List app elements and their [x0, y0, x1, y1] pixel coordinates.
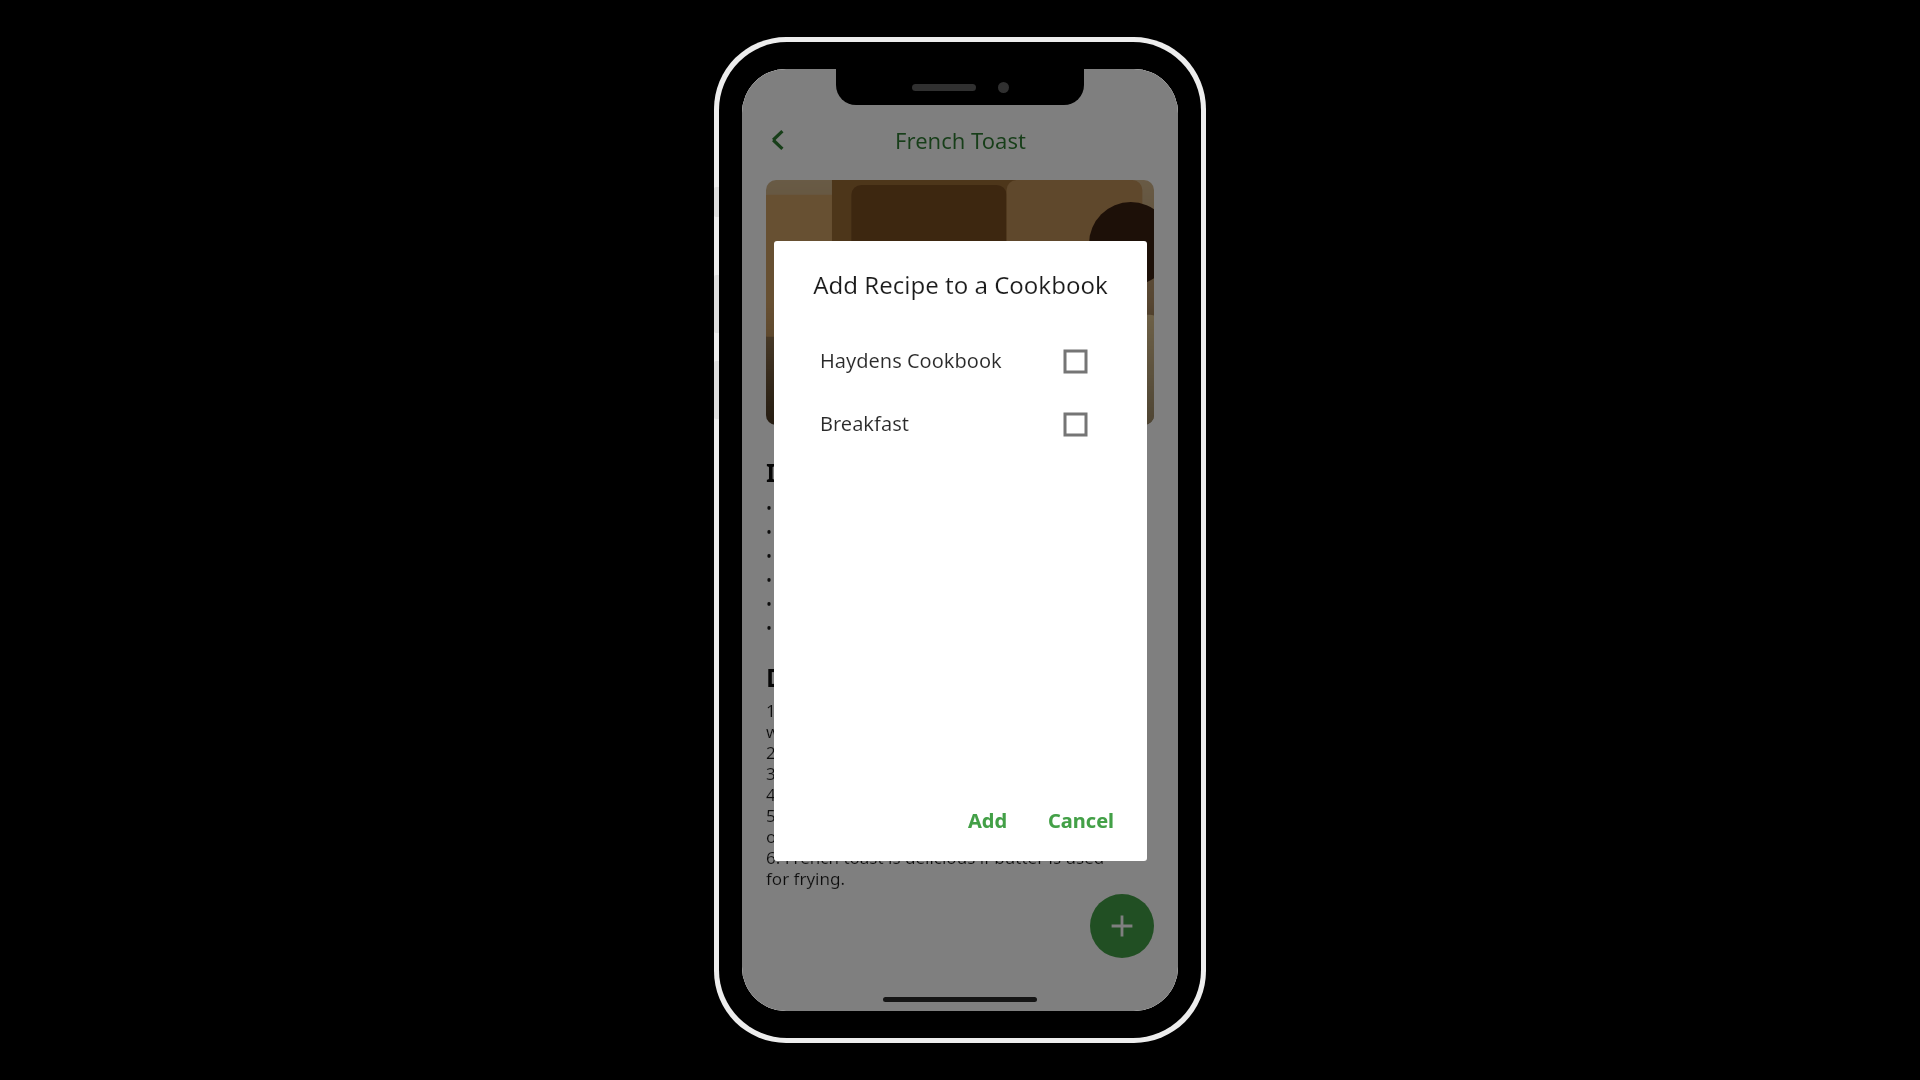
staticText: Cancel	[1048, 807, 1115, 834]
staticText: Directions	[766, 660, 894, 694]
button[interactable]: Cancel	[1034, 798, 1129, 843]
staticText: Breakfast	[820, 410, 909, 437]
staticText: Add Recipe to a Cookbook	[774, 268, 1147, 301]
button[interactable]: Back	[754, 116, 802, 164]
staticText: French Toast	[895, 125, 1026, 155]
staticText: Add	[968, 807, 1008, 834]
button[interactable]: Breakfast	[774, 392, 1147, 455]
staticText: • 2 tablespoons butter	[766, 593, 937, 615]
button[interactable]: Toggle Haydens Cookbook	[1060, 346, 1090, 376]
button[interactable]: Toggle Breakfast	[1060, 409, 1090, 439]
staticText: • syrup or jelly	[766, 617, 877, 639]
staticText: • 1/2 teaspoon salt	[766, 545, 910, 567]
staticText: Ingredients	[766, 455, 912, 489]
button[interactable]: Add recipe	[1090, 894, 1154, 958]
staticText: • 1 cup milk	[766, 521, 857, 543]
staticText: Haydens Cookbook	[820, 347, 1002, 374]
staticText: • 3 eggs	[766, 497, 831, 519]
button[interactable]: Haydens Cookbook	[774, 329, 1147, 392]
button[interactable]: Add	[954, 798, 1022, 843]
staticText: • 6 slices bread	[766, 569, 883, 591]
staticText: 1. Beat eggs, milk and salt together unt…	[766, 699, 1113, 890]
